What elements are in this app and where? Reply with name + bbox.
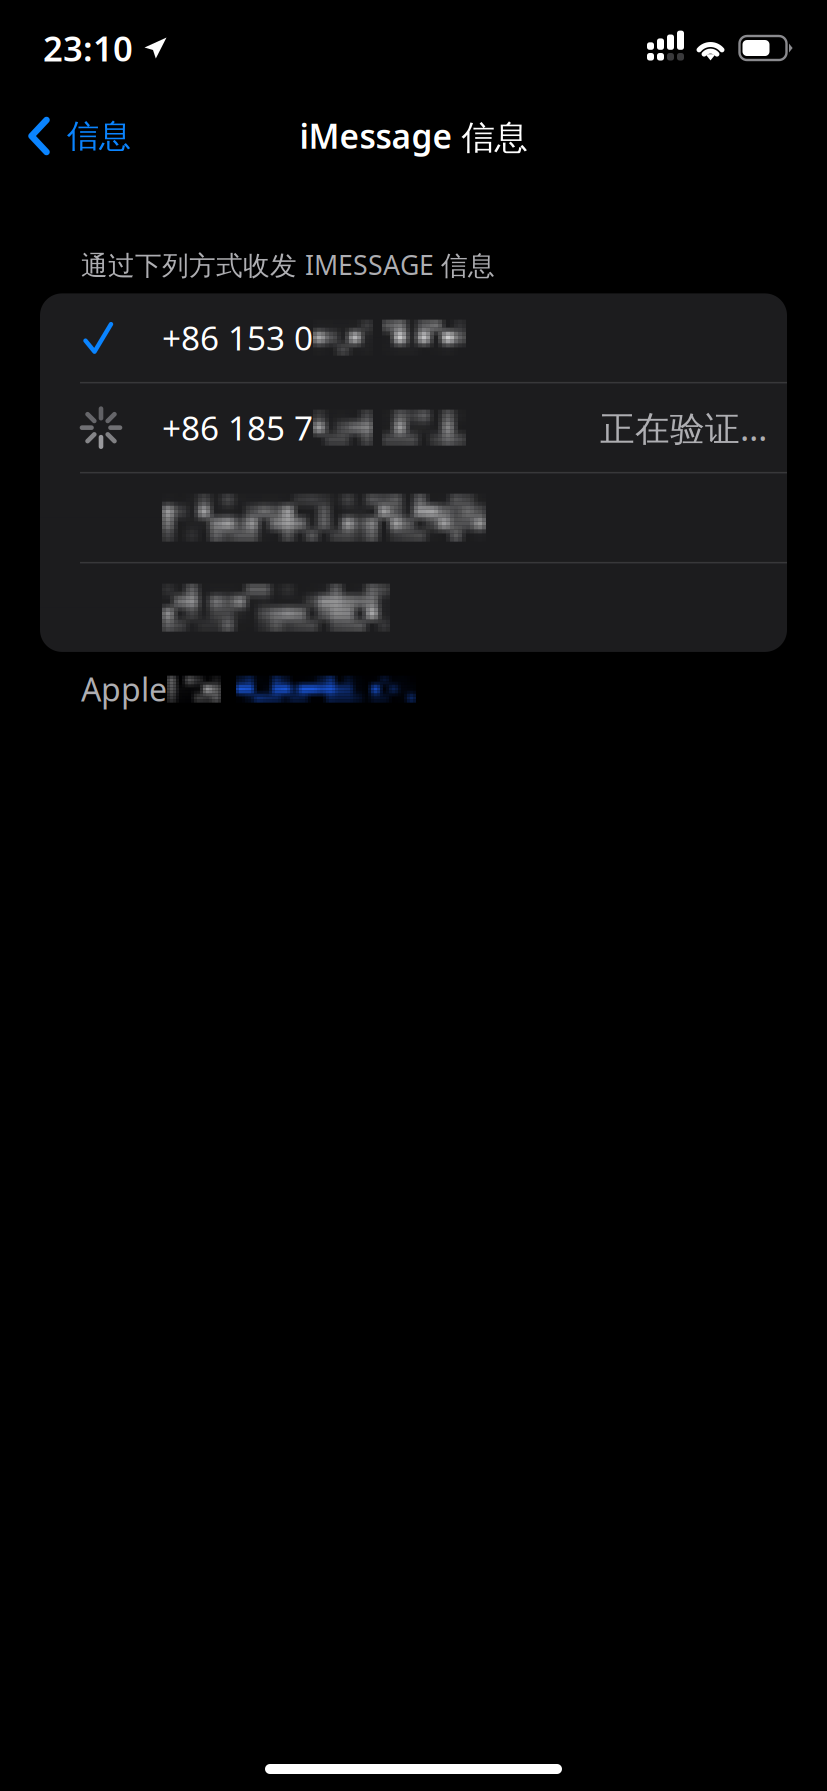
staticText: 23:10 (43, 25, 133, 71)
staticText: Apple (81, 668, 167, 710)
staticText: +86 153 0 (162, 315, 313, 360)
button[interactable]: 电子邮件地址 (40, 563, 787, 652)
staticText: 通过下列方式收发 IMESSAGE 信息 (81, 247, 495, 282)
staticText: +86 185 7 (162, 405, 313, 450)
button[interactable]: +86 153 0 (40, 293, 787, 382)
staticText: iMessage 信息 (299, 114, 527, 158)
button[interactable]: 电子邮件地址 (40, 473, 787, 562)
staticText: 信息 (67, 116, 131, 156)
staticText: 正在验证… (600, 405, 767, 451)
button[interactable]: +86 185 7 (40, 383, 787, 472)
button[interactable]: 信息 (16, 104, 143, 168)
